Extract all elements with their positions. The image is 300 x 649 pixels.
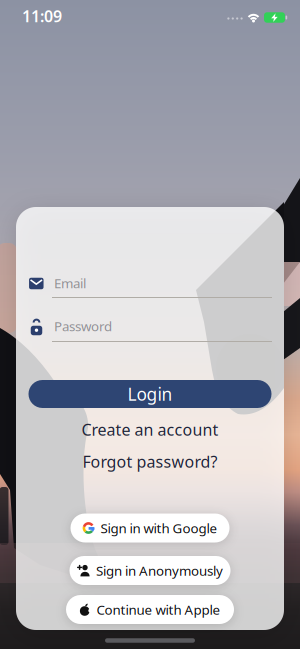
button[interactable]: Create an account [81, 419, 218, 440]
button[interactable]: Sign in Anonymously [69, 556, 230, 585]
staticText: Continue with Apple [96, 601, 220, 618]
staticText: Password [54, 317, 112, 335]
button[interactable]: Email [29, 268, 272, 302]
staticText: Forgot password? [82, 451, 217, 472]
staticText: 11:09 [22, 5, 62, 27]
button[interactable]: Forgot password? [82, 451, 217, 472]
staticText: Email [54, 274, 86, 292]
staticText: Login [127, 382, 172, 405]
button[interactable]: Continue with Apple [66, 595, 234, 624]
staticText: Sign in Anonymously [96, 562, 223, 579]
button[interactable]: Sign in with Google [70, 513, 229, 542]
staticText: Sign in with Google [100, 519, 217, 537]
button[interactable]: Password [29, 311, 272, 345]
staticText: Create an account [81, 419, 218, 440]
button[interactable]: Login [28, 380, 271, 408]
